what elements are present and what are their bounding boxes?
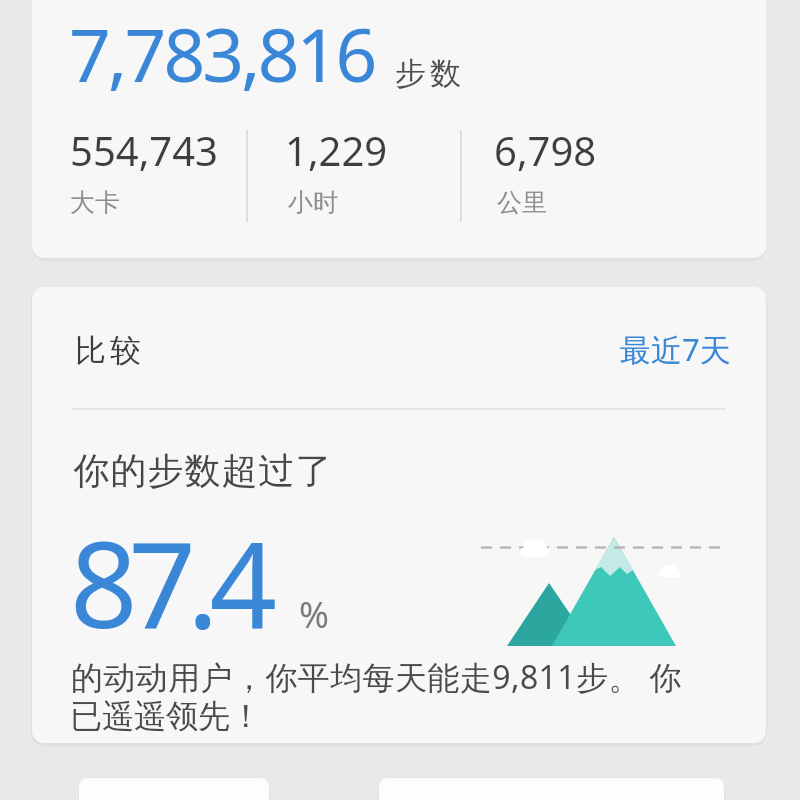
staticText: 最近7天 [620, 328, 731, 370]
staticText: 你的步数超过了 [73, 448, 332, 493]
staticText: 步数 [393, 54, 463, 93]
staticText: 大卡 [70, 187, 120, 218]
staticText: 的动动用户，你平均每天能走9,811步。 你 [71, 655, 682, 699]
staticText: 87.4 [70, 502, 269, 663]
staticText: 7,783,816 [69, 4, 375, 103]
staticText: 已遥遥领先！ [70, 696, 262, 736]
staticText: 554,743 [70, 123, 218, 177]
staticText: 小时 [288, 187, 338, 218]
staticText: 公里 [497, 187, 547, 218]
staticText: % [299, 590, 329, 639]
staticText: 比较 [73, 331, 143, 370]
staticText: 6,798 [494, 123, 597, 177]
staticText: 1,229 [285, 123, 388, 177]
